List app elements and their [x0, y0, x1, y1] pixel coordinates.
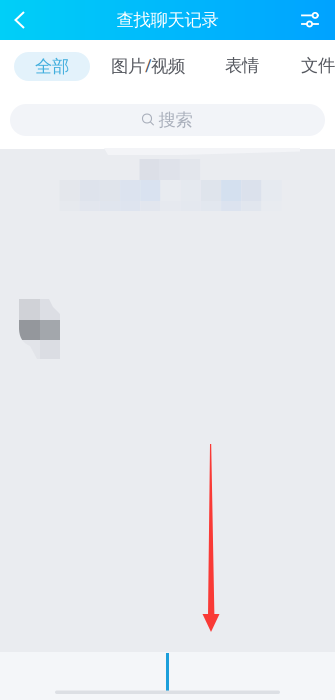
staticText: 表情: [225, 55, 259, 76]
staticText: 图片/视频: [111, 54, 185, 77]
button[interactable]: Back: [2, 0, 38, 40]
staticText: 查找聊天记录: [116, 9, 218, 31]
staticText: 文件: [301, 55, 335, 76]
button[interactable]: 全部: [14, 52, 90, 81]
staticText: 搜索: [158, 109, 192, 131]
button[interactable]: 图片/视频: [103, 52, 193, 79]
button[interactable]: 文件: [296, 52, 335, 79]
button[interactable]: Filter: [291, 0, 329, 40]
button[interactable]: 表情: [220, 52, 264, 79]
staticText: 全部: [35, 56, 69, 77]
